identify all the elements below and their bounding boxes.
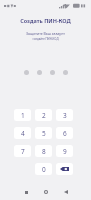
other: Backspace xyxy=(60,167,69,171)
staticText: Защитите Ваш аккаунт xyxy=(0,31,91,36)
button[interactable]: 0 xyxy=(35,163,52,175)
button[interactable]: 5 xyxy=(35,127,52,139)
staticText: 4 xyxy=(21,129,25,138)
button[interactable]: 8 xyxy=(35,145,52,157)
staticText: 6 xyxy=(63,129,67,138)
staticText: 2 xyxy=(42,111,46,120)
button[interactable]: 4 xyxy=(14,127,31,139)
button[interactable]: 1 xyxy=(14,109,31,121)
staticText: 1 xyxy=(21,111,25,120)
button[interactable]: 6 xyxy=(56,127,73,139)
staticText: создайте ПИН-КОД xyxy=(0,37,91,41)
staticText: 5 xyxy=(42,129,46,138)
staticText: 0 xyxy=(42,165,46,174)
staticText: Создать ПИН-КОД xyxy=(0,17,91,24)
button[interactable]: 9 xyxy=(56,145,73,157)
staticText: 9 xyxy=(63,147,67,156)
staticText: 8 xyxy=(42,147,46,156)
button[interactable]: Backspace xyxy=(56,163,73,175)
staticText: 7 xyxy=(21,147,25,156)
button[interactable]: 2 xyxy=(35,109,52,121)
staticText: 3 xyxy=(63,111,67,120)
button[interactable]: Home xyxy=(39,185,53,199)
button[interactable]: Back xyxy=(59,185,73,199)
button[interactable]: 7 xyxy=(14,145,31,157)
button[interactable]: 3 xyxy=(56,109,73,121)
button[interactable]: Recents xyxy=(19,185,33,199)
